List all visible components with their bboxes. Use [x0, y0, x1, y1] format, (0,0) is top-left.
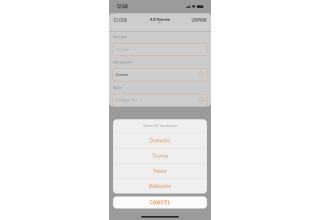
- button[interactable]: Configure first: [0, 49, 320, 96]
- staticText: Dometic: [119, 214, 201, 220]
- staticText: Choose A/C manufacturer: [93, 165, 227, 178]
- button[interactable]: Dometic: [0, 198, 320, 220]
